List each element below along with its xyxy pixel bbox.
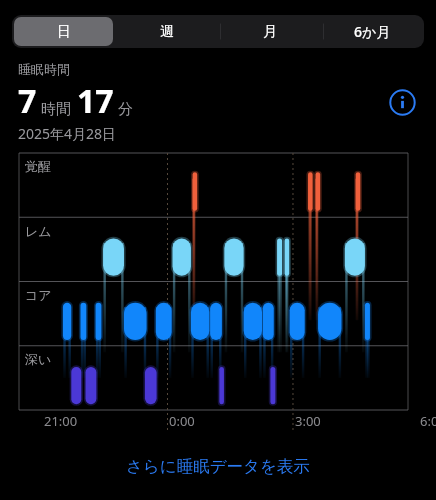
staticText: 6:00 [420,412,436,430]
staticText: 週 [160,23,174,41]
staticText: 睡眠時間 [18,61,70,77]
button[interactable]: 日 [14,17,113,46]
staticText: 3:00 [295,412,321,430]
staticText: さらに睡眠データを表示 [126,456,310,477]
staticText: 日 [57,23,71,41]
staticText: 21:00 [44,412,78,430]
staticText: 6か月 [354,22,391,41]
staticText: 覚醒 [25,158,51,174]
button[interactable]: 詳細情報 [384,84,420,120]
staticText: 0:00 [169,412,195,430]
staticText: レム [25,223,52,239]
staticText: 深い [25,351,52,367]
staticText: 月 [263,23,277,41]
button[interactable]: 週 [117,17,216,46]
staticText: コア [25,287,52,303]
button[interactable]: さらに睡眠データを表示 [0,433,436,500]
staticText: 17 [77,79,114,123]
button[interactable]: 6か月 [323,17,422,46]
button[interactable]: 月 [220,17,319,46]
staticText: 時間 [41,100,71,119]
staticText: 分 [118,100,133,119]
staticText: 7 [18,79,37,123]
staticText: 2025年4月28日 [18,124,117,143]
